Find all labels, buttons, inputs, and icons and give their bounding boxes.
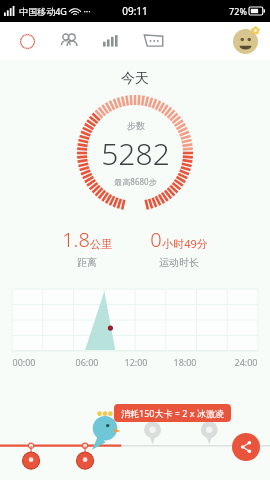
button[interactable]: Share bbox=[232, 433, 260, 461]
staticText: 5282 bbox=[101, 133, 170, 174]
button[interactable]: Friends bbox=[54, 26, 84, 56]
staticText: 小时49分 bbox=[162, 236, 208, 251]
staticText: 72% bbox=[229, 5, 247, 17]
staticText: 00:00 bbox=[12, 356, 36, 368]
staticText: 1.8 bbox=[62, 226, 90, 253]
staticText: 公里 bbox=[90, 237, 112, 251]
staticText: ··· bbox=[83, 5, 91, 17]
button[interactable]: 1.8 bbox=[62, 226, 112, 269]
staticText: 步数 bbox=[127, 120, 145, 131]
staticText: 消耗150大卡 = 2 x 冰激凌 bbox=[121, 407, 224, 419]
staticText: 最高8680步 bbox=[114, 176, 157, 187]
staticText: 0 bbox=[150, 226, 162, 253]
button[interactable]: Messages bbox=[138, 26, 168, 56]
staticText: 18:00 bbox=[173, 356, 197, 368]
staticText: 09:11 bbox=[122, 4, 148, 18]
button[interactable]: 0 bbox=[150, 226, 208, 269]
staticText: 06:00 bbox=[75, 356, 99, 368]
button[interactable]: 消耗150大卡 = 2 x 冰激凌 bbox=[114, 404, 231, 422]
button[interactable]: Mascot bbox=[88, 408, 122, 452]
staticText: 中国移动4G bbox=[19, 5, 67, 17]
staticText: 今天 bbox=[121, 70, 149, 88]
staticText: 24:00 bbox=[234, 356, 258, 368]
staticText: 12:00 bbox=[124, 356, 148, 368]
button[interactable]: Steps ring bbox=[12, 26, 42, 56]
staticText: 运动时长 bbox=[159, 256, 199, 269]
staticText: 距离 bbox=[77, 256, 97, 269]
button[interactable]: Profile bbox=[230, 26, 260, 56]
button[interactable]: Statistics bbox=[96, 26, 126, 56]
